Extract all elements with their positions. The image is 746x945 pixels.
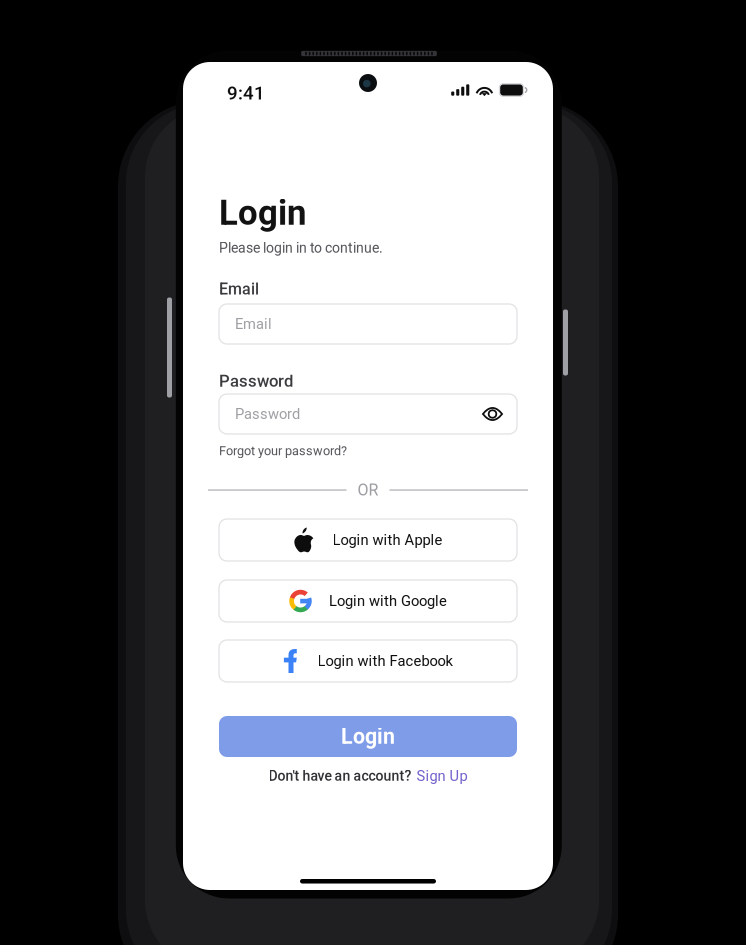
- staticText: Please login in to continue.: [219, 240, 383, 256]
- staticText: Login with Google: [329, 592, 447, 610]
- staticText: Email: [219, 280, 259, 298]
- button[interactable]: Forgot your password?: [219, 444, 347, 458]
- staticText: Login: [219, 193, 306, 233]
- button[interactable]: Login with Google: [219, 580, 517, 622]
- button[interactable]: Login with Apple: [219, 519, 517, 561]
- staticText: Password: [235, 405, 300, 423]
- button[interactable]: Show password: [482, 406, 503, 421]
- staticText: Password: [219, 371, 293, 391]
- staticText: Email: [235, 315, 272, 333]
- staticText: Login: [341, 724, 395, 749]
- staticText: Forgot your password?: [219, 444, 347, 458]
- button[interactable]: Login: [219, 716, 517, 757]
- staticText: 9:41: [227, 82, 265, 104]
- staticText: Sign Up: [416, 767, 467, 785]
- staticText: OR: [357, 481, 378, 499]
- staticText: Login with Facebook: [317, 652, 452, 670]
- button[interactable]: Sign Up: [416, 767, 467, 785]
- staticText: Login with Apple: [332, 531, 442, 549]
- staticText: Don't have an account?: [268, 768, 411, 784]
- button[interactable]: Login with Facebook: [219, 640, 517, 682]
